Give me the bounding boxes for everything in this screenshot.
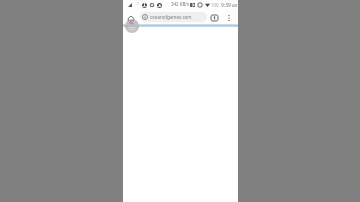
staticText: 342 KB/s	[171, 1, 189, 7]
button[interactable]: More options	[224, 13, 234, 23]
button[interactable]: oceanofgames.com	[140, 12, 207, 22]
staticText: 9:39	[221, 2, 231, 9]
staticText: 100	[211, 2, 219, 8]
button[interactable]: Assistive touch	[125, 19, 139, 33]
button[interactable]: Home	[125, 12, 137, 24]
staticText: AM	[232, 3, 238, 8]
button[interactable]: Tabs	[208, 12, 220, 24]
staticText: oceanofgames.com	[150, 14, 192, 20]
